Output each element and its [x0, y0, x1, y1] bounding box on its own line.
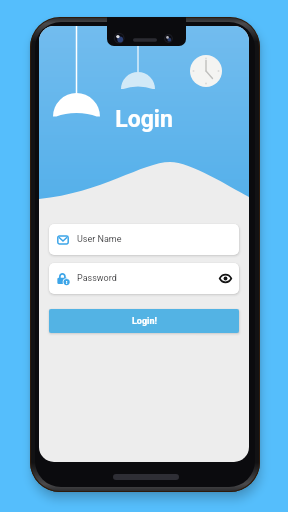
- staticText: Login!: [132, 316, 157, 327]
- button[interactable]: Show password: [217, 270, 234, 287]
- button[interactable]: Password: [49, 263, 239, 294]
- staticText: Login: [39, 106, 249, 133]
- staticText: User Name: [77, 234, 122, 245]
- button[interactable]: Login!: [49, 309, 239, 333]
- staticText: Password: [77, 273, 117, 284]
- button[interactable]: User Name: [49, 224, 239, 255]
